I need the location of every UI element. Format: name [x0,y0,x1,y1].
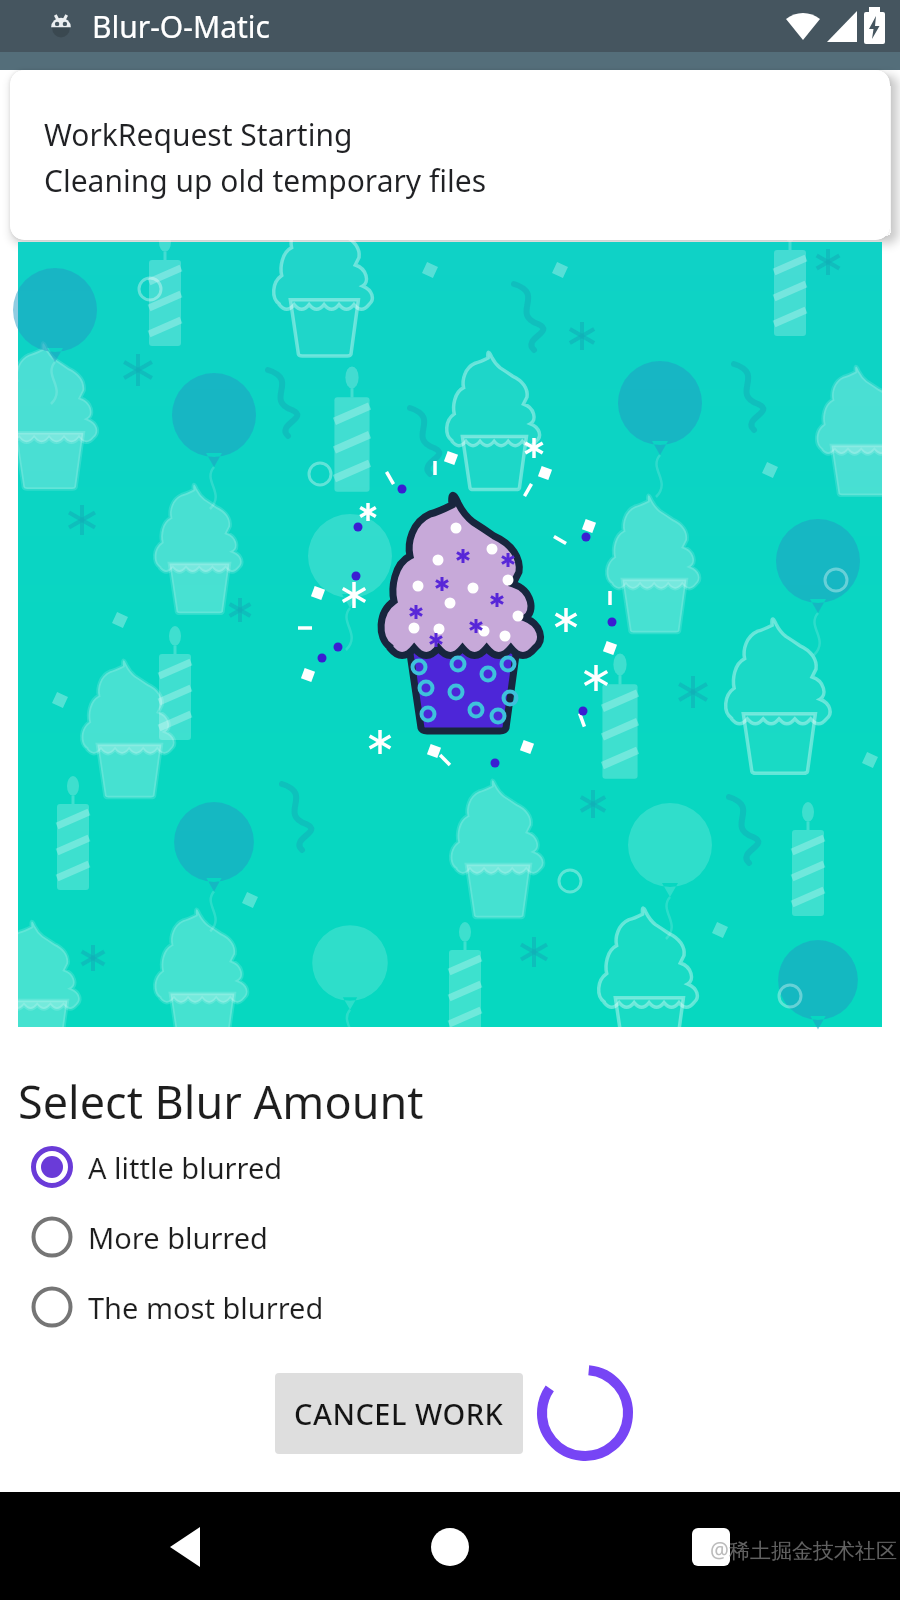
button[interactable] [600,1492,900,1600]
staticText: Select Blur Amount [18,1071,424,1132]
staticText: More blurred [88,1218,268,1257]
staticText: @稀土掘金技术社区 [710,1536,897,1565]
staticText: Blur-O-Matic [92,6,270,47]
button[interactable]: The most blurred [0,1272,900,1342]
staticText: The most blurred [88,1288,324,1327]
staticText: A little blurred [88,1148,283,1187]
button[interactable]: More blurred [0,1202,900,1272]
staticText: WorkRequest Starting [44,114,353,155]
button[interactable]: WorkRequest Starting [10,70,890,240]
button[interactable]: CANCEL WORK [275,1373,523,1454]
button[interactable] [0,1492,300,1600]
button[interactable]: A little blurred [0,1132,900,1202]
staticText: Cleaning up old temporary files [44,160,487,201]
button[interactable] [300,1492,600,1600]
staticText: CANCEL WORK [294,1394,504,1433]
